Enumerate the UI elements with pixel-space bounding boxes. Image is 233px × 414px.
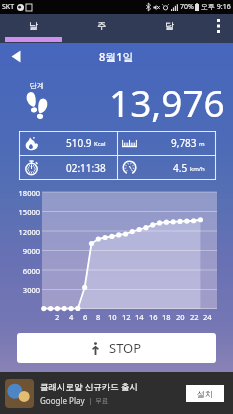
staticText: 24 <box>203 312 212 322</box>
button[interactable]: 02:11:38 <box>19 155 117 180</box>
staticText: 3000 <box>22 285 40 295</box>
staticText: 18 <box>162 312 171 322</box>
staticText: 12 <box>122 312 131 322</box>
button[interactable]: 510.9 <box>19 131 117 155</box>
button[interactable]: 달 <box>135 14 203 43</box>
button[interactable]: 주 <box>67 14 135 43</box>
button[interactable]: 4.5 <box>117 155 216 180</box>
staticText: 15000 <box>18 207 40 217</box>
staticText: 9000 <box>22 246 40 256</box>
staticText: 달 <box>165 20 174 31</box>
staticText: | 무료 <box>85 396 109 405</box>
staticText: 4.5 <box>173 161 188 175</box>
staticText: Kcal <box>94 140 106 148</box>
staticText: 16 <box>149 312 158 322</box>
staticText: Google Play <box>40 395 85 406</box>
staticText: 12000 <box>18 227 40 237</box>
staticText: 510.9 <box>66 136 92 150</box>
staticText: 14 <box>135 312 144 322</box>
staticText: 13,976 <box>109 77 225 127</box>
staticText: 18000 <box>18 188 40 198</box>
staticText: 20 <box>176 312 185 322</box>
staticText: km/h <box>190 165 205 173</box>
staticText: m <box>199 140 205 148</box>
staticText: 9,783 <box>171 136 197 150</box>
staticText: 10 <box>108 312 117 322</box>
staticText: 날 <box>29 20 38 31</box>
staticText: SKT <box>2 2 15 12</box>
staticText: 8 <box>96 312 101 322</box>
staticText: 2 <box>55 312 60 322</box>
staticText: 단계 <box>30 81 44 90</box>
staticText: STOP <box>109 339 142 357</box>
staticText: 22 <box>190 312 199 322</box>
button[interactable]: 날 <box>0 14 67 43</box>
staticText: 설치 <box>197 389 213 399</box>
staticText: 70% <box>180 2 194 12</box>
staticText: 클래시로얄 신규카드 출시 <box>40 381 138 393</box>
staticText: 6000 <box>22 266 40 276</box>
button[interactable]: STOP <box>17 333 216 363</box>
staticText: 8월1일 <box>99 49 134 64</box>
staticText: 6 <box>83 312 88 322</box>
staticText: 4 <box>69 312 74 322</box>
staticText: 주 <box>97 20 106 31</box>
staticText: 오후 9:16 <box>201 2 231 12</box>
button[interactable]: Previous day <box>6 46 26 66</box>
button[interactable]: More options <box>203 14 233 43</box>
button[interactable]: 클래시로얄 신규카드 출시 <box>0 372 233 414</box>
staticText: 02:11:38 <box>66 161 106 175</box>
button[interactable]: 9,783 <box>117 131 216 155</box>
button[interactable]: 설치 <box>186 385 224 402</box>
